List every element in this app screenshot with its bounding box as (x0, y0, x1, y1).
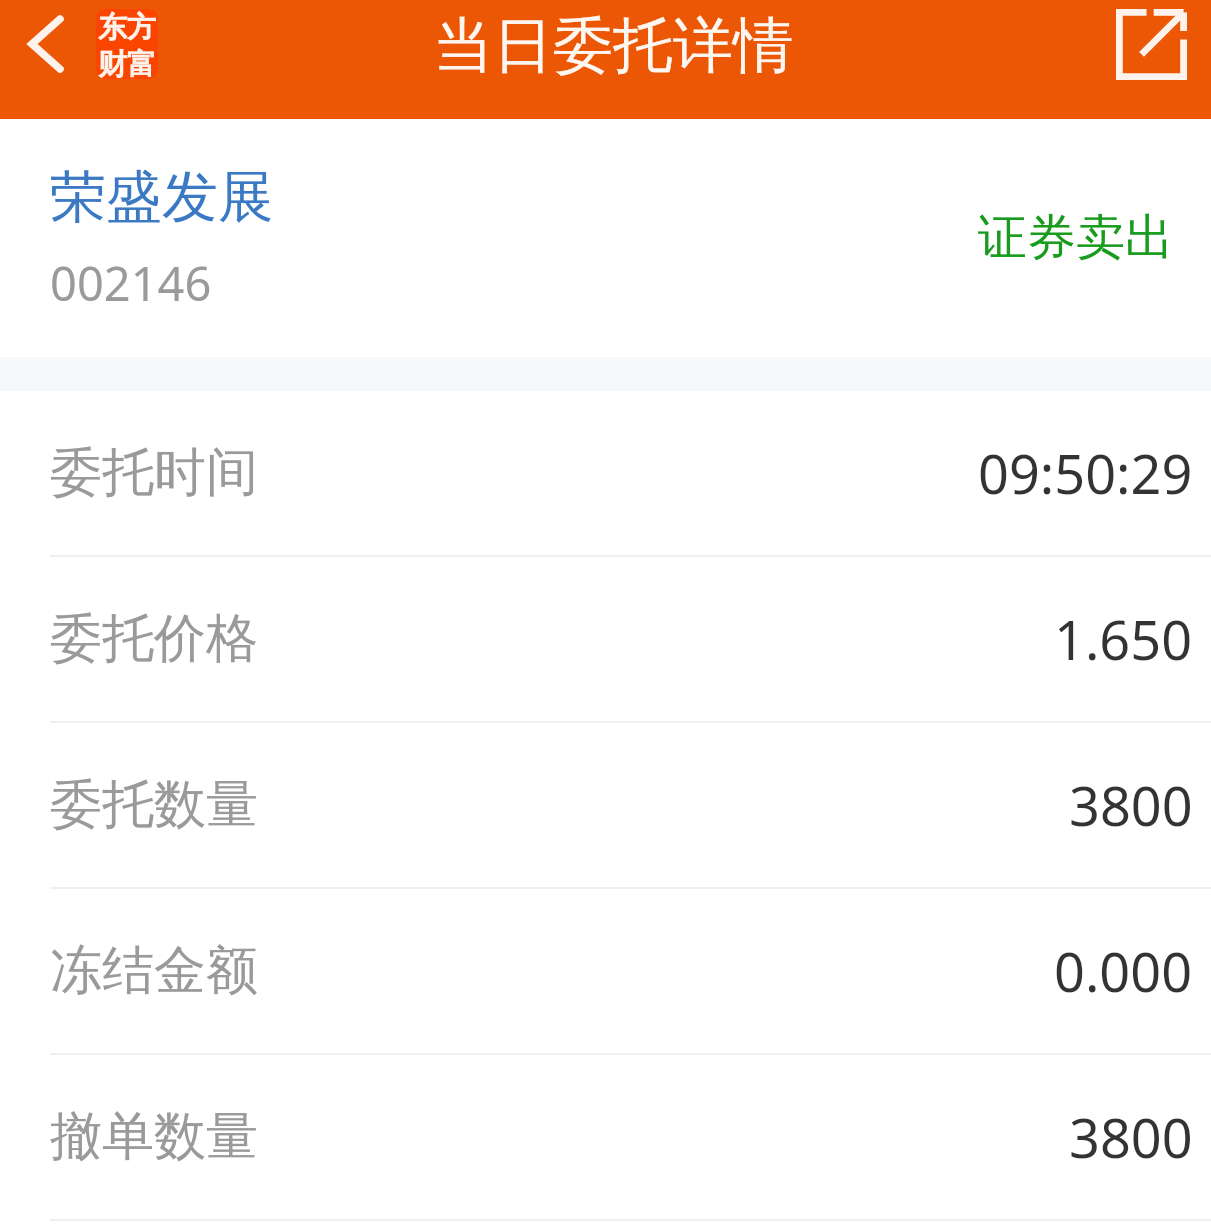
staticText: 委托时间 (50, 440, 258, 506)
staticText: 1.650 (1054, 602, 1193, 676)
button[interactable]: 冻结金额 (0, 889, 1211, 1055)
button[interactable]: Back (6, 0, 86, 88)
button[interactable]: 委托数量 (0, 723, 1211, 889)
button[interactable]: 委托时间 (0, 391, 1211, 557)
staticText: 委托数量 (50, 772, 258, 838)
staticText: 09:50:29 (978, 436, 1193, 510)
button[interactable]: 委托价格 (0, 557, 1211, 723)
button[interactable]: 撤单数量 (0, 1055, 1211, 1221)
staticText: 0.000 (1054, 934, 1193, 1008)
staticText: 冻结金额 (50, 938, 258, 1004)
staticText: 东方 (98, 9, 156, 46)
button[interactable]: Share (1107, 0, 1195, 88)
staticText: 证券卖出 (978, 207, 1174, 269)
staticText: 荣盛发展 (50, 162, 274, 233)
staticText: 撤单数量 (50, 1104, 258, 1170)
staticText: 当日委托详情 (433, 8, 793, 84)
staticText: 3800 (1069, 1100, 1193, 1174)
staticText: 3800 (1069, 768, 1193, 842)
staticText: 委托价格 (50, 606, 258, 672)
button[interactable]: 荣盛发展 (0, 119, 1211, 357)
staticText: 002146 (50, 251, 212, 315)
staticText: 财富 (98, 46, 156, 79)
